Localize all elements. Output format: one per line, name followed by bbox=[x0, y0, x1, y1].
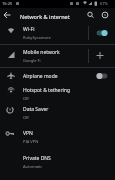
staticText: Private DNS bbox=[23, 155, 51, 162]
button[interactable]: Mobile network bbox=[0, 45, 115, 67]
button[interactable] bbox=[88, 45, 115, 67]
staticText: Hotspot & tethering bbox=[23, 87, 70, 94]
staticText: VPN bbox=[23, 130, 33, 137]
staticText: Off bbox=[23, 96, 29, 101]
button[interactable] bbox=[0, 8, 18, 22]
button[interactable] bbox=[99, 8, 111, 22]
staticText: RubySycamore bbox=[23, 35, 51, 40]
staticText: Mobile network bbox=[23, 49, 60, 56]
staticText: Airplane mode bbox=[23, 73, 58, 80]
button[interactable]: Airplane mode bbox=[0, 68, 115, 84]
button[interactable] bbox=[84, 8, 96, 22]
staticText: 16:25 bbox=[2, 1, 13, 6]
staticText: Wi-Fi bbox=[23, 26, 35, 33]
staticText: Off bbox=[23, 115, 29, 120]
button[interactable]: Hotspot & tethering bbox=[0, 84, 115, 103]
staticText: Data Saver bbox=[23, 106, 49, 113]
staticText: Automatic bbox=[23, 164, 43, 169]
button[interactable]: Wi-Fi bbox=[0, 22, 115, 44]
staticText: PIA VPN bbox=[23, 139, 39, 144]
staticText: Google Fi bbox=[23, 58, 41, 63]
button[interactable] bbox=[88, 68, 115, 84]
button[interactable] bbox=[88, 22, 115, 44]
staticText: Network & internet bbox=[20, 13, 70, 20]
button[interactable]: VPN bbox=[0, 127, 115, 146]
staticText: 67% bbox=[100, 1, 108, 6]
button[interactable]: Private DNS bbox=[0, 152, 115, 171]
button[interactable]: Data Saver bbox=[0, 103, 115, 122]
